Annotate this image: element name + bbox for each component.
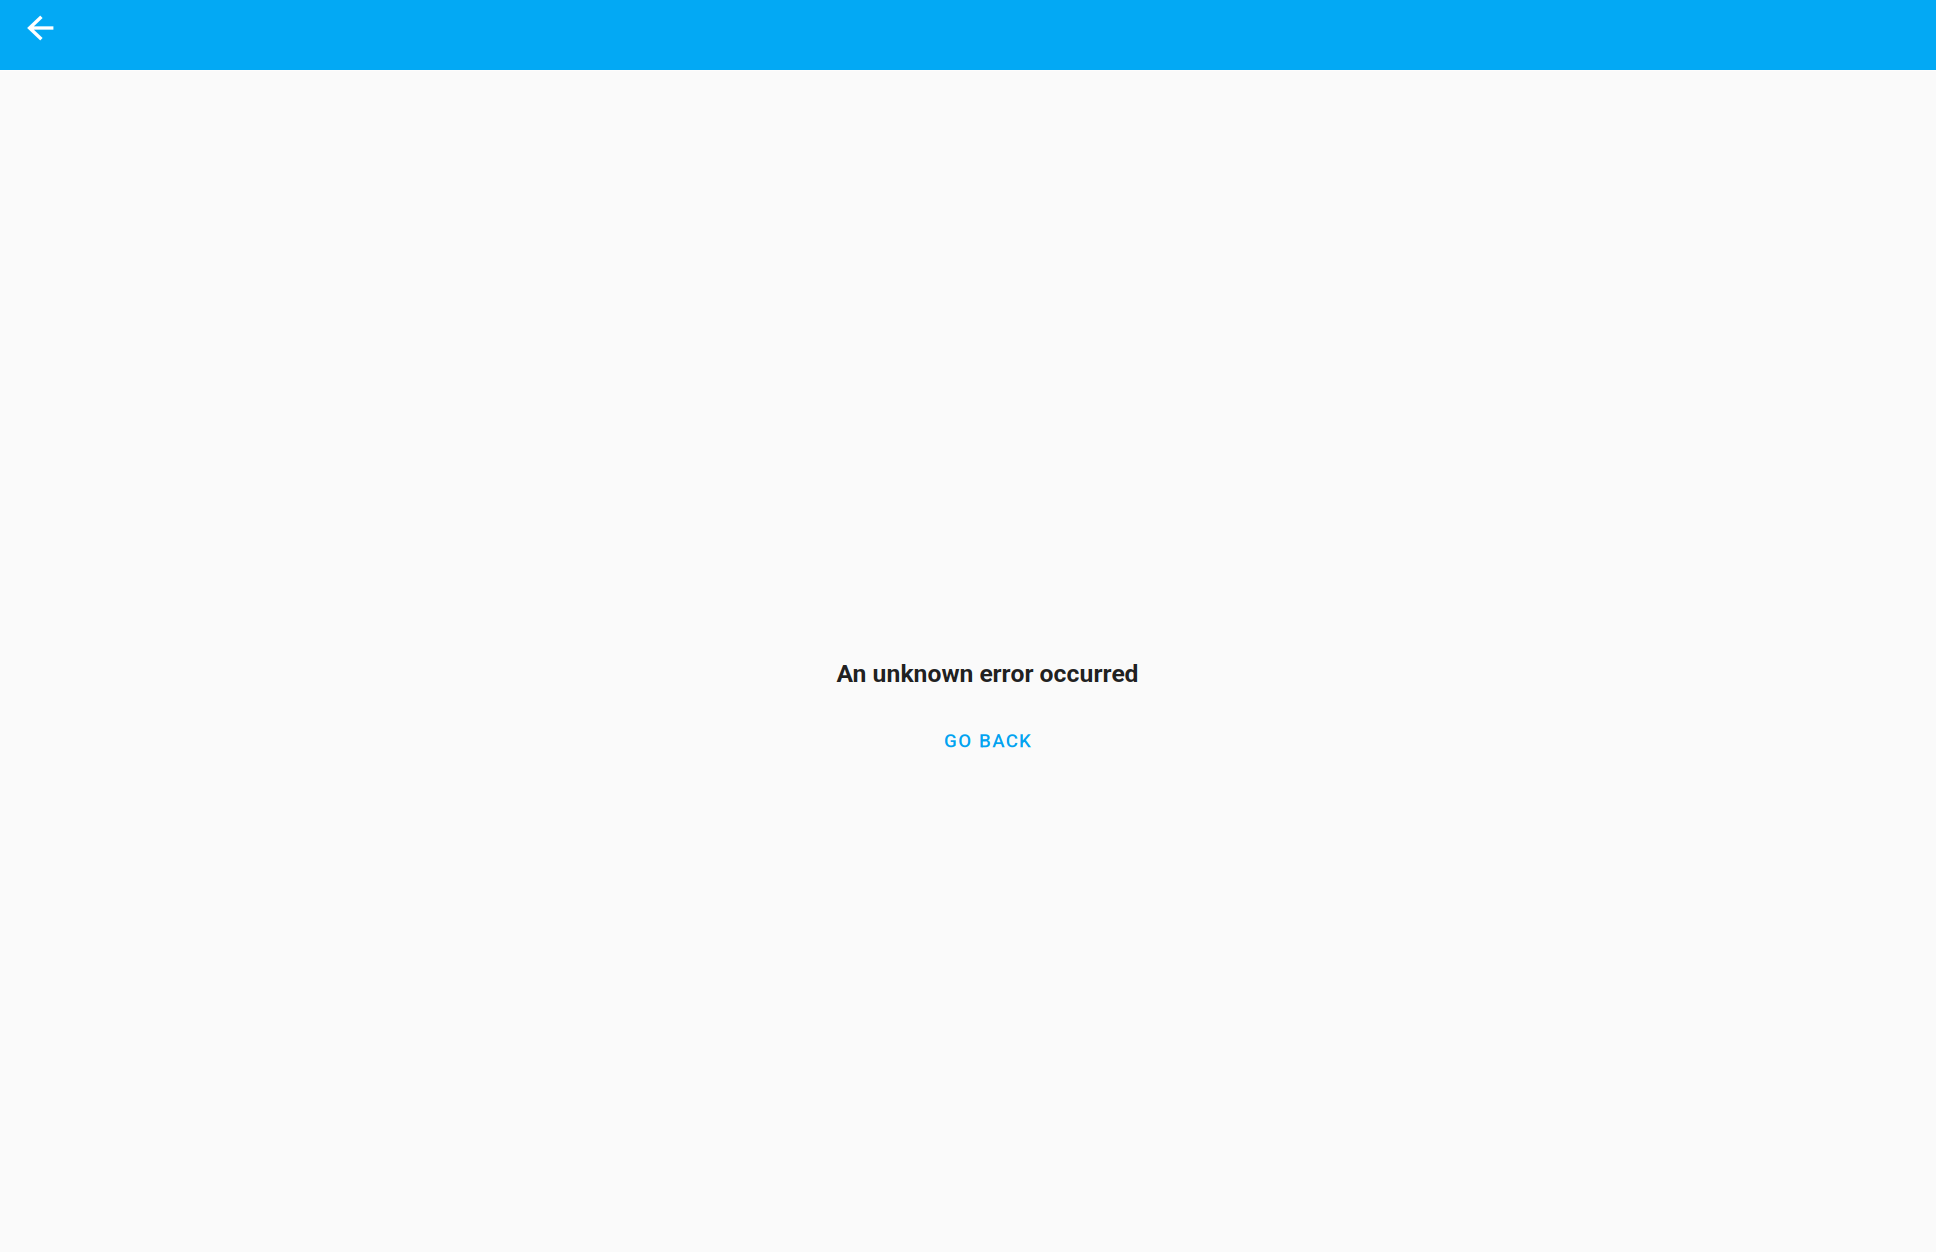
staticText: GO BACK [944,730,1031,752]
staticText: An unknown error occurred [836,659,1138,688]
button[interactable]: GO BACK [936,724,1039,758]
button[interactable]: Back [13,0,69,56]
